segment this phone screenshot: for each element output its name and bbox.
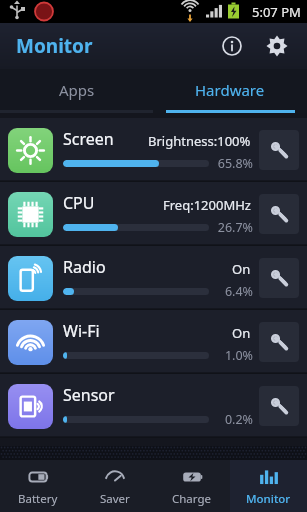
button[interactable]: Wi-Fi	[0, 310, 307, 374]
staticText: On	[232, 324, 251, 342]
staticText: 1.0%	[224, 347, 253, 364]
staticText: Monitor	[16, 33, 93, 59]
staticText: Brightness:100%	[148, 132, 251, 150]
button[interactable]: Charge	[153, 460, 230, 512]
button[interactable]: Saver	[76, 460, 153, 512]
staticText: Freq:1200MHz	[163, 196, 251, 214]
staticText: Battery	[18, 491, 58, 507]
staticText: Sensor	[63, 384, 115, 406]
button[interactable]: Settings for Screen	[259, 130, 299, 170]
button[interactable]: Battery	[0, 460, 76, 512]
button[interactable]: CPU	[0, 182, 307, 246]
staticText: Wi-Fi	[63, 320, 100, 342]
button[interactable]: Sensor	[0, 374, 307, 438]
button[interactable]: Info	[213, 27, 251, 65]
button[interactable]: Hardware	[153, 69, 307, 110]
button[interactable]: Settings for CPU	[259, 194, 299, 234]
button[interactable]: Settings for Sensor	[259, 386, 299, 426]
staticText: 65.8%	[217, 155, 253, 172]
staticText: Monitor	[246, 491, 291, 507]
button[interactable]: Settings for Wi-Fi	[259, 322, 299, 362]
staticText: Charge	[172, 491, 212, 507]
button[interactable]: Apps	[0, 69, 153, 110]
staticText: 6.4%	[224, 283, 253, 300]
button[interactable]: Monitor	[230, 460, 307, 512]
staticText: 0.2%	[224, 411, 253, 428]
staticText: On	[232, 260, 251, 278]
staticText: Hardware	[195, 80, 265, 100]
staticText: CPU	[63, 192, 95, 214]
staticText: Saver	[100, 491, 130, 507]
staticText: Apps	[59, 80, 95, 100]
button[interactable]: Settings for Radio	[259, 258, 299, 298]
staticText: Screen	[63, 128, 114, 150]
button[interactable]: Screen	[0, 118, 307, 182]
staticText: Radio	[63, 256, 106, 278]
staticText: 5:07 PM	[252, 3, 301, 21]
staticText: 26.7%	[217, 219, 253, 236]
button[interactable]: Radio	[0, 246, 307, 310]
button[interactable]: Settings	[257, 26, 297, 66]
